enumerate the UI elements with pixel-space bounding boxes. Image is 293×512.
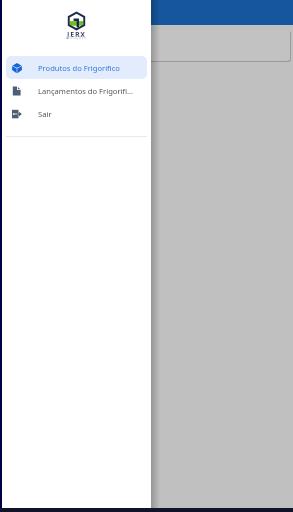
staticText: SOLUÇÕES: [66, 36, 87, 40]
button[interactable]: Produtos do Frigorifico: [6, 56, 147, 79]
button[interactable]: JERX Soluções: [66, 11, 87, 45]
button[interactable]: Sair: [6, 102, 147, 125]
button[interactable]: Fechar menu: [151, 0, 293, 512]
staticText: Lançamentos do Frigorifi…: [38, 86, 134, 96]
staticText: JERX: [67, 29, 86, 39]
button[interactable]: Lançamentos do Frigorifi…: [6, 79, 147, 102]
staticText: Sair: [38, 109, 52, 119]
staticText: Produtos do Frigorifico: [38, 63, 120, 73]
